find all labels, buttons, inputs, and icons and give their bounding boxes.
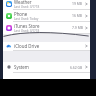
staticText: iTunes Store (14, 23, 40, 29)
staticText: 16 MB (72, 13, 83, 18)
button[interactable]: System (3, 62, 90, 73)
staticText: 7.9 MB (72, 25, 83, 30)
button[interactable]: iCloud Drive (3, 42, 90, 51)
staticText: System (14, 64, 29, 70)
staticText: Weather (14, 0, 32, 5)
staticText: Last Used: Today (14, 17, 39, 21)
staticText: 19 MB (72, 1, 83, 6)
staticText: iCloud Drive (14, 43, 40, 49)
staticText: 6.62 GB (70, 65, 83, 70)
staticText: Last Used: 3/7/18 (14, 5, 40, 9)
button[interactable]: iTunes Store (3, 22, 90, 34)
button[interactable]: Phone (3, 10, 90, 22)
staticText: Phone (14, 11, 28, 17)
button[interactable]: Weather (3, 0, 90, 10)
staticText: Last Used: 3/7/18 (14, 29, 40, 33)
